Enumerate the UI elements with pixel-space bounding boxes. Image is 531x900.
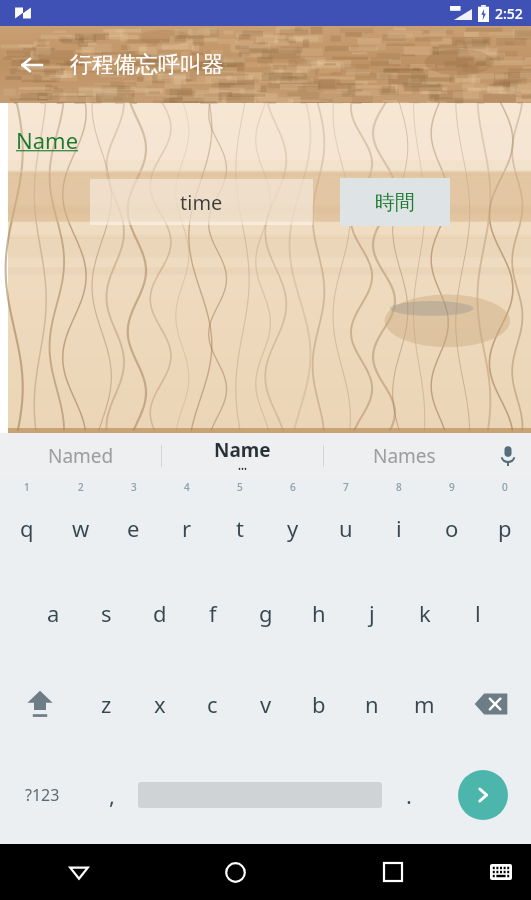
button[interactable]: v (239, 658, 292, 749)
button[interactable]: Enter (458, 770, 508, 820)
staticText: 行程備忘呼叫器 (70, 51, 224, 79)
button[interactable]: 1 (0, 478, 54, 568)
button[interactable]: Name (162, 433, 323, 478)
staticText: x (154, 689, 166, 719)
button[interactable]: 5 (213, 478, 266, 568)
button[interactable]: 時間 (340, 178, 450, 226)
button[interactable]: Back (0, 844, 157, 900)
button[interactable]: 8 (372, 478, 425, 568)
staticText: g (259, 598, 273, 628)
button[interactable]: c (186, 658, 239, 749)
staticText: Names (373, 443, 436, 469)
button[interactable]: 3 (107, 478, 160, 568)
staticText: Name (214, 437, 271, 463)
staticText: Name (16, 125, 79, 155)
staticText: o (445, 513, 459, 543)
staticText: p (498, 513, 512, 543)
staticText: 3 (131, 480, 137, 494)
staticText: Named (48, 443, 114, 469)
button[interactable]: ?123 (0, 749, 85, 840)
staticText: . (406, 780, 412, 810)
button[interactable]: l (451, 568, 504, 658)
button[interactable]: Back (8, 41, 56, 89)
staticText: 2 (78, 480, 84, 494)
staticText: n (365, 689, 379, 719)
button[interactable]: z (80, 658, 133, 749)
button[interactable]: 4 (160, 478, 213, 568)
staticText: 6 (290, 480, 296, 494)
staticText: q (20, 513, 34, 543)
button[interactable]: 0 (478, 478, 531, 568)
button[interactable]: x (133, 658, 186, 749)
staticText: h (312, 598, 326, 628)
staticText: v (260, 689, 272, 719)
button[interactable]: 7 (319, 478, 372, 568)
staticText: 2:52 (495, 4, 523, 23)
staticText: 時間 (375, 190, 415, 215)
button[interactable]: k (398, 568, 451, 658)
button[interactable]: 2 (54, 478, 107, 568)
staticText: 4 (184, 480, 190, 494)
button[interactable]: Backspace (451, 658, 531, 749)
staticText: time (180, 189, 223, 216)
staticText: l (475, 598, 481, 628)
staticText: s (101, 598, 112, 628)
button[interactable]: g (239, 568, 292, 658)
staticText: a (47, 598, 60, 628)
button[interactable]: Shift (0, 658, 80, 749)
staticText: 7 (343, 480, 349, 494)
staticText: t (236, 513, 244, 543)
button[interactable]: Home (157, 844, 314, 900)
staticText: f (209, 598, 217, 628)
button[interactable]: Names (324, 433, 485, 478)
button[interactable]: n (345, 658, 398, 749)
staticText: d (153, 598, 167, 628)
staticText: 5 (237, 480, 243, 494)
button[interactable]: s (80, 568, 133, 658)
staticText: b (312, 689, 326, 719)
staticText: c (207, 689, 218, 719)
button[interactable]: f (186, 568, 239, 658)
staticText: ••• (238, 463, 248, 474)
staticText: m (414, 689, 435, 719)
staticText: r (182, 513, 192, 543)
button[interactable]: j (345, 568, 398, 658)
staticText: k (419, 598, 431, 628)
staticText: , (109, 780, 115, 810)
staticText: y (287, 513, 299, 543)
staticText: w (72, 513, 90, 543)
button[interactable]: Named (0, 433, 161, 478)
staticText: ?123 (25, 784, 60, 806)
staticText: 0 (502, 480, 508, 494)
staticText: 9 (449, 480, 455, 494)
staticText: e (127, 513, 140, 543)
button[interactable]: b (292, 658, 345, 749)
button[interactable]: d (133, 568, 186, 658)
button[interactable]: Recent apps (314, 844, 471, 900)
button[interactable]: Voice input (485, 433, 531, 478)
staticText: z (101, 689, 112, 719)
button[interactable]: , (85, 749, 138, 840)
button[interactable]: Switch keyboard (471, 844, 531, 900)
button[interactable]: time (90, 179, 313, 225)
staticText: i (396, 513, 402, 543)
button[interactable]: Name (16, 125, 79, 155)
staticText: j (369, 598, 375, 628)
button[interactable]: 9 (425, 478, 478, 568)
staticText: u (339, 513, 353, 543)
button[interactable]: h (292, 568, 345, 658)
staticText: 8 (396, 480, 402, 494)
button[interactable]: a (27, 568, 80, 658)
staticText: 1 (24, 480, 30, 494)
button[interactable]: m (398, 658, 451, 749)
button[interactable]: . (382, 749, 435, 840)
button[interactable]: 6 (266, 478, 319, 568)
